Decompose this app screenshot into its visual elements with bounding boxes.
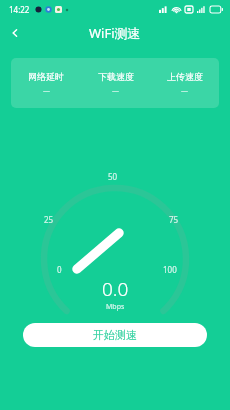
staticText: 下载速度 (98, 71, 134, 82)
staticText: — (112, 86, 119, 96)
staticText: 100 (163, 264, 177, 275)
staticText: 上传速度 (167, 71, 203, 82)
staticText: Mbps (106, 302, 125, 312)
button[interactable]: 开始测速 (23, 323, 207, 347)
staticText: 50 (108, 171, 118, 182)
staticText: 14:22 (9, 4, 30, 15)
staticText: 0.0 (102, 276, 129, 302)
button[interactable]: 上传速度 (150, 71, 219, 96)
staticText: 网络延时 (28, 71, 64, 82)
button[interactable]: 网络延时 (11, 71, 81, 96)
staticText: 开始测速 (93, 328, 137, 342)
staticText: 75 (169, 214, 179, 225)
staticText: WiFi测速 (89, 24, 141, 42)
button[interactable]: 下载速度 (81, 71, 150, 96)
button[interactable]: Back (0, 18, 30, 48)
staticText: 25 (44, 214, 54, 225)
staticText: — (181, 86, 188, 96)
staticText: 0 (57, 264, 62, 275)
staticText: — (43, 86, 50, 96)
